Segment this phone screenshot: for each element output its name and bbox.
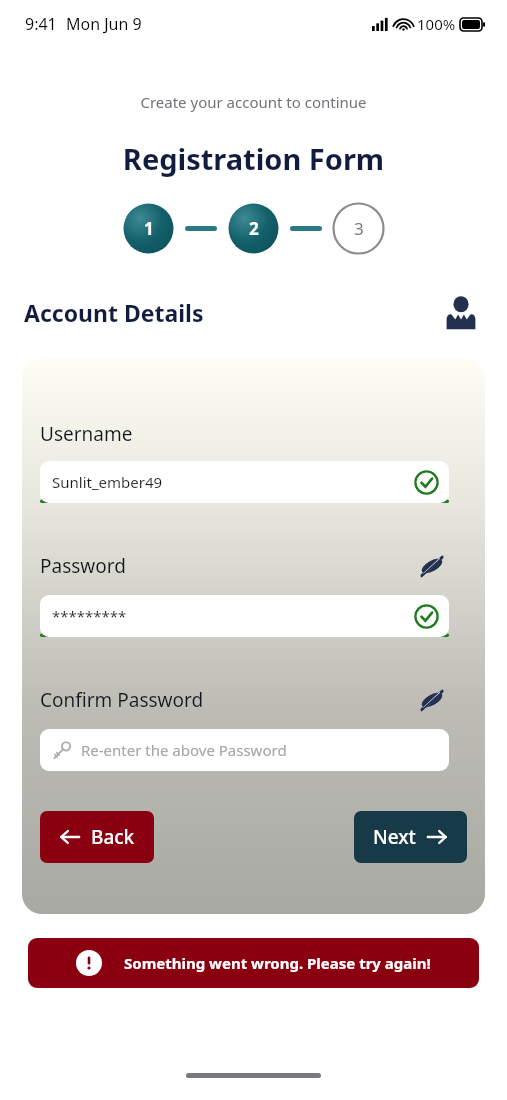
button[interactable]: Something went wrong. Please try again! [28,938,479,988]
staticText: Mon Jun 9 [66,13,142,35]
staticText: 2 [249,217,259,240]
button[interactable]: Back [40,811,154,863]
staticText: 1 [144,217,154,240]
staticText: 3 [354,217,364,240]
staticText: Password [40,553,126,579]
button[interactable]: Account [439,290,483,334]
button[interactable]: Next [354,811,467,863]
button[interactable]: Re-enter the above Password [40,729,449,771]
staticText: ********* [52,606,127,626]
staticText: Back [91,824,135,850]
button[interactable]: 3 [332,202,385,255]
staticText: Next [373,824,416,850]
staticText: Something went wrong. Please try again! [124,953,431,973]
button[interactable]: 1 [122,202,175,255]
staticText: Account Details [24,297,204,328]
staticText: 9:41 [25,13,57,35]
button[interactable]: ********* [40,595,449,637]
button[interactable]: Sunlit_ember49 [40,461,449,503]
button[interactable]: 2 [227,202,280,255]
staticText: Create your account to continue [0,92,507,112]
staticText: Registration Form [0,139,507,178]
staticText: Confirm Password [40,687,204,713]
staticText: Re-enter the above Password [81,740,287,760]
staticText: Username [40,421,133,447]
staticText: Sunlit_ember49 [52,472,163,492]
staticText: 100% [417,14,456,34]
button[interactable]: Toggle password visibility [415,683,449,717]
button[interactable]: Toggle password visibility [415,549,449,583]
